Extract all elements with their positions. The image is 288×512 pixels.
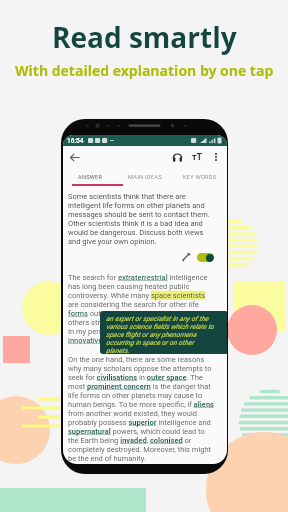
button[interactable]: MAIN IDEAS xyxy=(117,168,172,186)
button[interactable]: Back xyxy=(63,146,85,168)
button[interactable]: Edit xyxy=(179,250,193,264)
staticText: MAIN IDEAS xyxy=(128,174,162,181)
staticText: an expert or specialist in any of the va… xyxy=(106,315,215,354)
staticText: ANSWER xyxy=(78,174,103,181)
staticText: The search for extraterrestrial intellig… xyxy=(68,273,216,345)
staticText: ᴛT xyxy=(192,152,203,163)
staticText: On the one hand, there are some reasons … xyxy=(68,355,216,463)
staticText: With detailed explanation by one tap xyxy=(15,61,274,80)
staticText: 16:54 xyxy=(67,137,84,145)
button[interactable]: KEY WORDS xyxy=(172,168,227,186)
button[interactable]: Toggle translation xyxy=(197,253,214,262)
staticText: KEY WORDS xyxy=(183,174,217,181)
button[interactable]: Listen xyxy=(167,147,187,167)
button[interactable]: More options xyxy=(207,148,225,166)
button[interactable]: an expert or specialist in any of the va… xyxy=(100,311,227,354)
button[interactable]: Text size xyxy=(187,147,207,167)
button[interactable]: ANSWER xyxy=(63,168,117,186)
staticText: Some scientists think that there are int… xyxy=(68,192,216,246)
staticText: Read smartly xyxy=(52,18,237,56)
